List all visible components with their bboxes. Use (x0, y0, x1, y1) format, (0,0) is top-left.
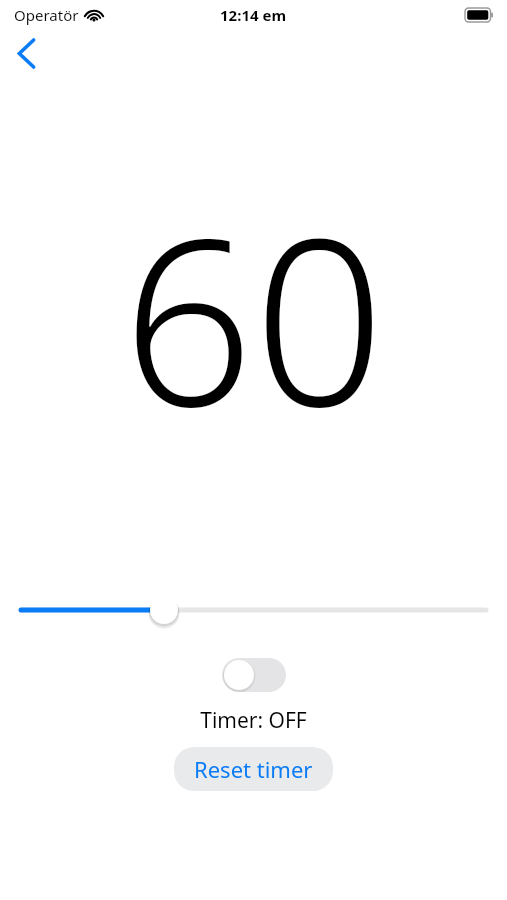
staticText: Timer: OFF (200, 706, 307, 735)
staticText: Operatör (14, 5, 79, 25)
staticText: 12:14 em (220, 5, 287, 25)
staticText: 60 (122, 160, 385, 472)
button[interactable]: Back (4, 33, 48, 73)
button[interactable]: Reset timer (174, 747, 333, 791)
staticText: Reset timer (194, 754, 313, 784)
button[interactable]: Timer toggle, off (222, 658, 286, 692)
button[interactable]: Timer duration slider (0, 588, 507, 632)
